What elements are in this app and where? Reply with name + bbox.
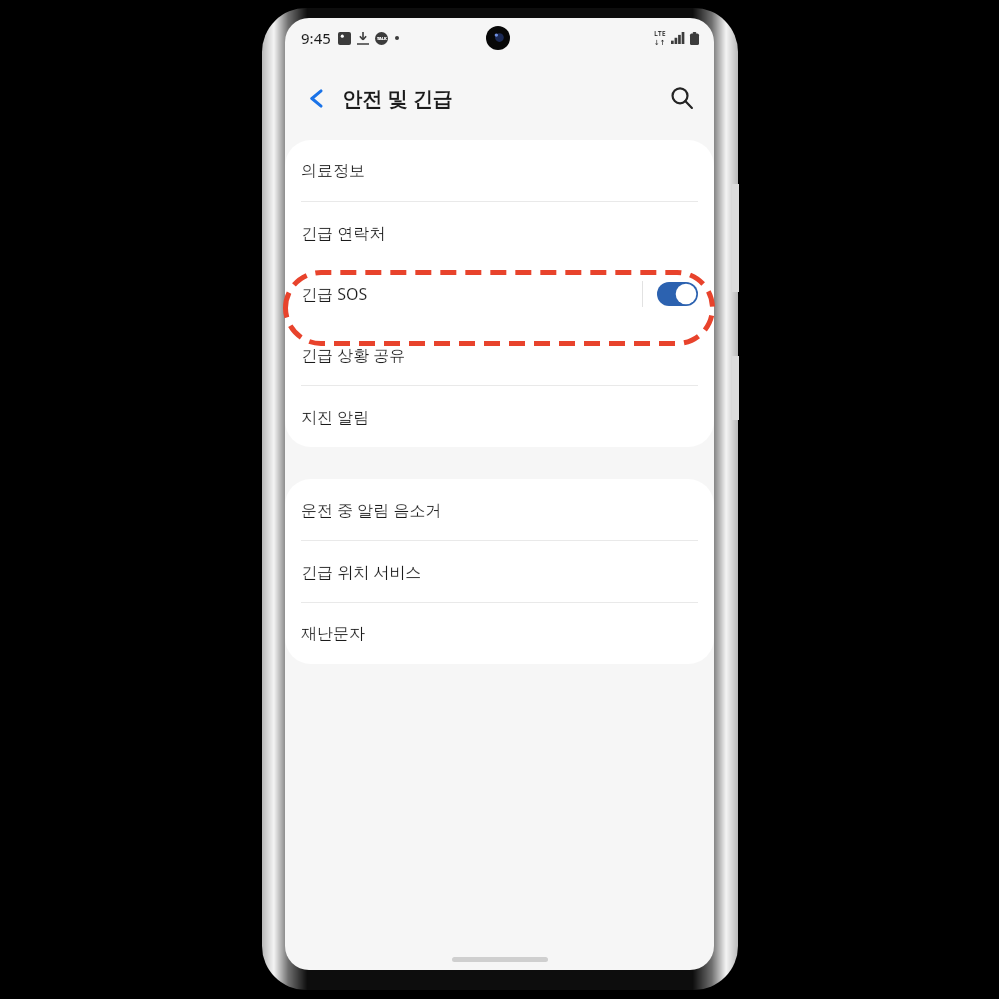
staticText: 9:45 (301, 28, 331, 48)
staticText: 재난문자 (301, 624, 365, 644)
staticText: 의료정보 (301, 161, 365, 181)
staticText: 긴급 위치 서비스 (301, 561, 422, 583)
staticText: 긴급 SOS (301, 283, 642, 305)
button[interactable]: 재난문자 (285, 603, 714, 664)
button[interactable]: 지진 알림 (285, 386, 714, 447)
staticText: 안전 및 긴급 (342, 85, 453, 112)
button[interactable]: 긴급 SOS (285, 263, 714, 324)
button[interactable]: 긴급 연락처 (285, 202, 714, 263)
button[interactable]: 운전 중 알림 음소거 (285, 479, 714, 540)
staticText: 지진 알림 (301, 406, 370, 428)
button[interactable]: Search (664, 80, 700, 116)
button[interactable]: Back (299, 81, 333, 115)
button[interactable]: 긴급 상황 공유 (285, 324, 714, 385)
staticText: TALK (377, 36, 387, 41)
button[interactable]: 의료정보 (285, 140, 714, 201)
staticText: 운전 중 알림 음소거 (301, 499, 442, 521)
staticText: ↓↑ (654, 39, 666, 47)
staticText: 긴급 연락처 (301, 222, 386, 244)
staticText: LTE (654, 29, 666, 39)
button[interactable]: 긴급 위치 서비스 (285, 541, 714, 602)
staticText: 긴급 상황 공유 (301, 344, 406, 366)
